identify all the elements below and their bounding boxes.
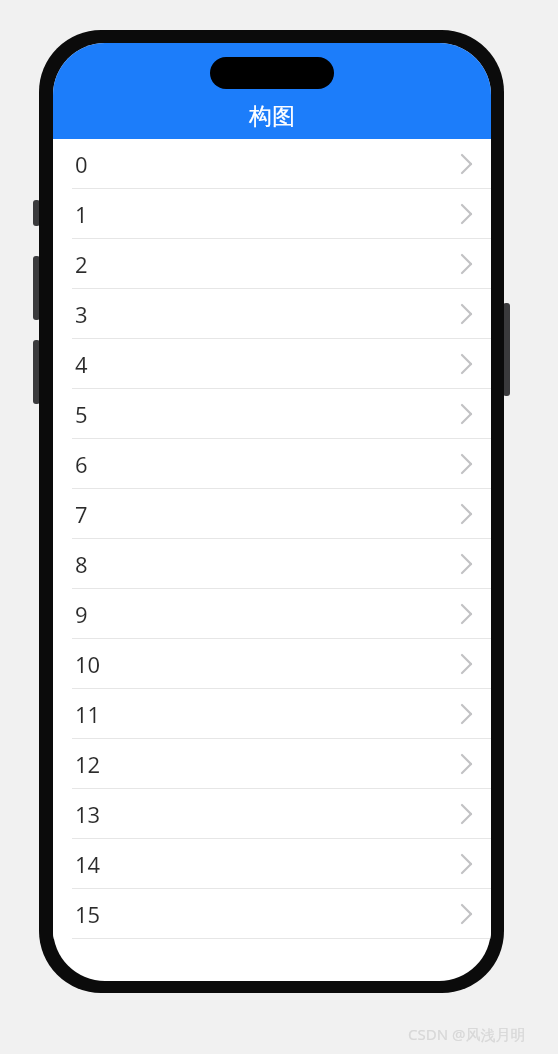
button[interactable]: 14 xyxy=(53,839,491,889)
staticText: 1 xyxy=(75,199,88,229)
staticText: 3 xyxy=(75,299,88,329)
staticText: 12 xyxy=(75,749,101,779)
button[interactable]: 0 xyxy=(53,139,491,189)
button[interactable]: 2 xyxy=(53,239,491,289)
button[interactable]: 15 xyxy=(53,889,491,939)
staticText: 14 xyxy=(75,849,101,879)
staticText: 8 xyxy=(75,549,88,579)
staticText: 4 xyxy=(75,349,88,379)
staticText: 9 xyxy=(75,599,88,629)
button[interactable]: 11 xyxy=(53,689,491,739)
staticText: 7 xyxy=(75,499,88,529)
button[interactable]: 12 xyxy=(53,739,491,789)
staticText: 6 xyxy=(75,449,88,479)
staticText: 10 xyxy=(75,649,101,679)
button[interactable]: 9 xyxy=(53,589,491,639)
staticText: 2 xyxy=(75,249,88,279)
button[interactable]: 6 xyxy=(53,439,491,489)
staticText: 11 xyxy=(75,699,101,729)
button[interactable]: 7 xyxy=(53,489,491,539)
staticText: 构图 xyxy=(249,102,295,131)
button[interactable]: 13 xyxy=(53,789,491,839)
button[interactable]: 10 xyxy=(53,639,491,689)
staticText: 0 xyxy=(75,149,88,179)
button[interactable]: 3 xyxy=(53,289,491,339)
staticText: 5 xyxy=(75,399,88,429)
button[interactable]: 4 xyxy=(53,339,491,389)
staticText: CSDN @风浅月明 xyxy=(408,1024,526,1044)
button[interactable]: 1 xyxy=(53,189,491,239)
button[interactable]: 5 xyxy=(53,389,491,439)
staticText: 15 xyxy=(75,899,101,929)
staticText: 13 xyxy=(75,799,101,829)
button[interactable]: 8 xyxy=(53,539,491,589)
